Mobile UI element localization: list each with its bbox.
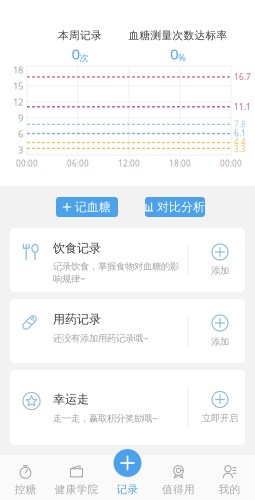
- staticText: 立即开启: [202, 412, 238, 424]
- staticText: 4.4: [234, 136, 246, 147]
- staticText: 12: [13, 96, 23, 108]
- staticText: 06:00: [67, 158, 89, 169]
- staticText: 记录饮食，掌握食物对血糖的影响规律~: [53, 261, 179, 285]
- staticText: 15: [13, 80, 23, 92]
- staticText: 饮食记录: [53, 241, 101, 256]
- staticText: 记录: [116, 483, 138, 496]
- button[interactable]: 健康学院: [51, 455, 102, 500]
- button[interactable]: Add record: [112, 448, 142, 478]
- button[interactable]: 记录: [102, 455, 153, 500]
- button[interactable]: 用药记录: [10, 299, 245, 363]
- button[interactable]: 控糖: [0, 455, 51, 500]
- staticText: 0: [71, 44, 79, 64]
- button[interactable]: 饮食记录: [10, 228, 245, 292]
- staticText: 00:00: [16, 158, 38, 169]
- button[interactable]: 记血糖: [56, 197, 118, 217]
- staticText: 9: [18, 112, 23, 124]
- staticText: 对比分析: [157, 200, 205, 214]
- staticText: 添加: [211, 336, 229, 347]
- staticText: 6.1: [234, 128, 246, 139]
- staticText: 血糖测量次数达标率: [128, 29, 227, 42]
- staticText: 幸运走: [53, 392, 89, 407]
- staticText: 3.3: [234, 144, 246, 154]
- staticText: %: [178, 51, 186, 64]
- staticText: 控糖: [14, 483, 36, 496]
- staticText: 18: [13, 64, 23, 76]
- button[interactable]: 幸运走: [10, 370, 245, 445]
- staticText: 12:00: [118, 158, 140, 169]
- staticText: 值得用: [162, 483, 195, 496]
- staticText: 添加: [211, 265, 229, 276]
- staticText: 还没有添加用药记录哦~: [53, 332, 148, 344]
- staticText: 我的: [218, 483, 240, 496]
- staticText: 健康学院: [54, 483, 98, 496]
- staticText: 00:00: [220, 158, 242, 169]
- staticText: 本周记录: [58, 29, 102, 42]
- button[interactable]: 值得用: [153, 455, 204, 500]
- button[interactable]: 对比分析: [145, 197, 205, 217]
- staticText: 用药记录: [53, 312, 101, 327]
- button[interactable]: 我的: [204, 455, 255, 500]
- staticText: 16.7: [234, 72, 251, 82]
- staticText: 3: [18, 144, 23, 156]
- staticText: 记血糖: [75, 200, 111, 214]
- staticText: 次: [79, 52, 88, 64]
- staticText: 0: [170, 44, 178, 64]
- staticText: 11.1: [234, 101, 251, 112]
- staticText: 走一走，赢取积分奖励哦~: [53, 412, 157, 424]
- staticText: 18:00: [169, 158, 191, 169]
- staticText: 7.8: [234, 119, 246, 130]
- staticText: 6: [18, 128, 23, 140]
